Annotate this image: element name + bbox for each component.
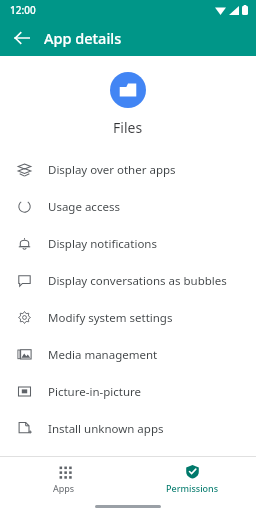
staticText: Files	[113, 118, 143, 137]
staticText: Picture-in-picture	[48, 384, 142, 400]
button[interactable]: Display over other apps	[0, 151, 256, 188]
staticText: Modify system settings	[48, 310, 173, 326]
button[interactable]: Usage access	[0, 188, 256, 225]
staticText: 12:00	[10, 3, 36, 17]
button[interactable]: Install unknown apps	[0, 410, 256, 447]
staticText: Permissions	[166, 482, 219, 494]
button[interactable]: Media management	[0, 336, 256, 373]
button[interactable]: Picture-in-picture	[0, 373, 256, 410]
button[interactable]: Permissions	[128, 457, 256, 500]
button[interactable]: Display conversations as bubbles	[0, 262, 256, 299]
staticText: Install unknown apps	[48, 421, 164, 437]
button[interactable]: Display notifications	[0, 225, 256, 262]
staticText: Alarms & reminders	[48, 458, 156, 474]
button[interactable]: Modify system settings	[0, 299, 256, 336]
button[interactable]: Apps	[0, 457, 128, 500]
staticText: Usage access	[48, 199, 120, 215]
staticText: Display over other apps	[48, 162, 176, 178]
staticText: App details	[44, 28, 122, 48]
staticText: Apps	[53, 482, 75, 494]
staticText: Media management	[48, 347, 158, 363]
staticText: Display notifications	[48, 236, 157, 252]
button[interactable]: Alarms & reminders	[0, 447, 256, 484]
button[interactable]: Back	[6, 22, 38, 54]
staticText: Display conversations as bubbles	[48, 273, 227, 289]
